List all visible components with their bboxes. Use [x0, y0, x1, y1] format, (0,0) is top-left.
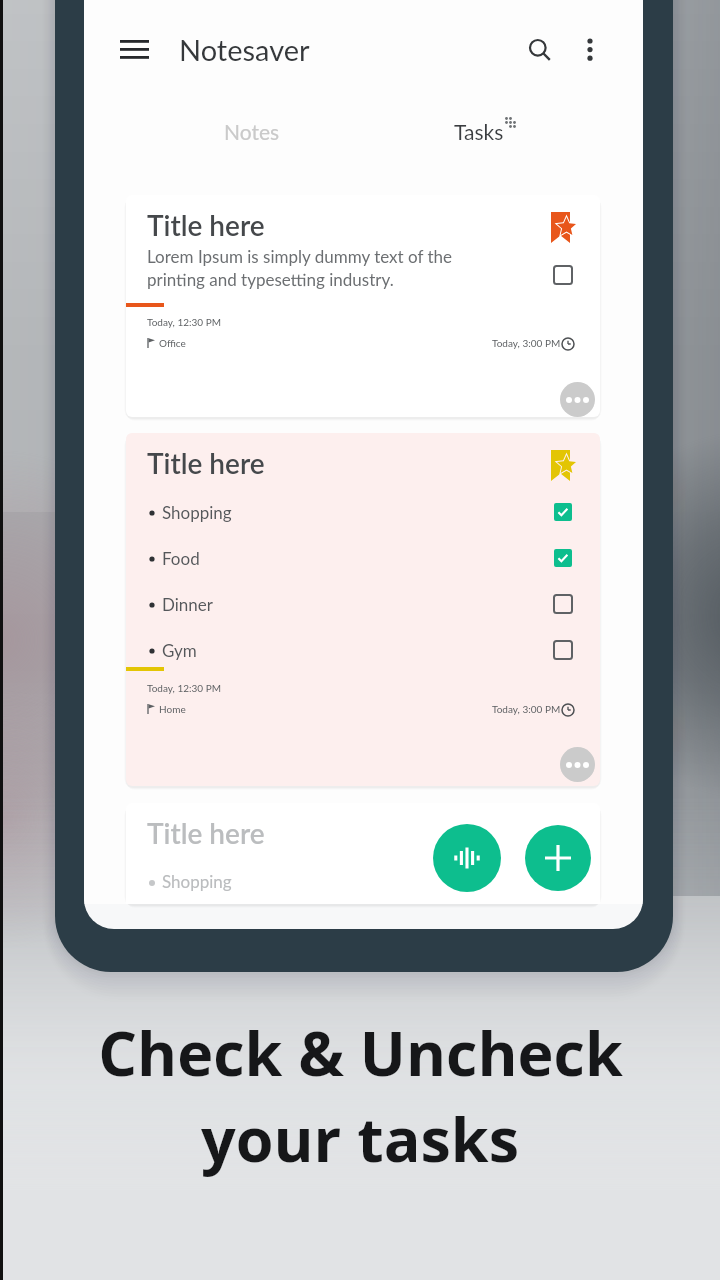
- button[interactable]: Tasks: [428, 114, 529, 148]
- button[interactable]: Search: [516, 26, 564, 74]
- button[interactable]: Notes: [201, 114, 302, 148]
- staticText: your tasks: [201, 1097, 519, 1180]
- button[interactable]: Unchecked: [554, 641, 572, 659]
- button[interactable]: Checked: [554, 549, 572, 567]
- staticText: Home: [159, 703, 186, 715]
- button[interactable]: More: [560, 747, 595, 782]
- staticText: Gym: [162, 640, 197, 660]
- staticText: Office: [159, 337, 186, 349]
- staticText: Title here: [147, 446, 265, 480]
- staticText: Shopping: [162, 502, 232, 522]
- staticText: Shopping: [162, 871, 232, 891]
- staticText: Tasks: [454, 119, 504, 144]
- staticText: Food: [162, 548, 200, 568]
- staticText: Today, 12:30 PM: [147, 316, 221, 328]
- button[interactable]: Title here: [126, 195, 600, 417]
- button[interactable]: More options: [566, 25, 614, 73]
- button[interactable]: Checked: [554, 503, 572, 521]
- button[interactable]: Unchecked: [554, 595, 572, 613]
- button[interactable]: Title here: [126, 803, 600, 904]
- button[interactable]: Title here: [126, 433, 600, 786]
- staticText: Today, 3:00 PM: [492, 703, 561, 715]
- staticText: Today, 12:30 PM: [147, 682, 221, 694]
- staticText: Notesaver: [179, 32, 310, 67]
- staticText: Notes: [224, 119, 280, 144]
- button[interactable]: More: [560, 382, 595, 417]
- staticText: Lorem Ipsum is simply dummy text of the …: [147, 246, 452, 290]
- button[interactable]: Menu: [110, 25, 158, 73]
- button[interactable]: Add note: [525, 825, 591, 891]
- staticText: Dinner: [162, 594, 213, 614]
- staticText: Title here: [147, 208, 265, 242]
- staticText: Today, 3:00 PM: [492, 337, 561, 349]
- staticText: Check & Uncheck: [98, 1011, 623, 1094]
- staticText: Title here: [147, 816, 265, 850]
- button[interactable]: Unchecked: [554, 266, 572, 284]
- button[interactable]: Voice note: [433, 824, 501, 892]
